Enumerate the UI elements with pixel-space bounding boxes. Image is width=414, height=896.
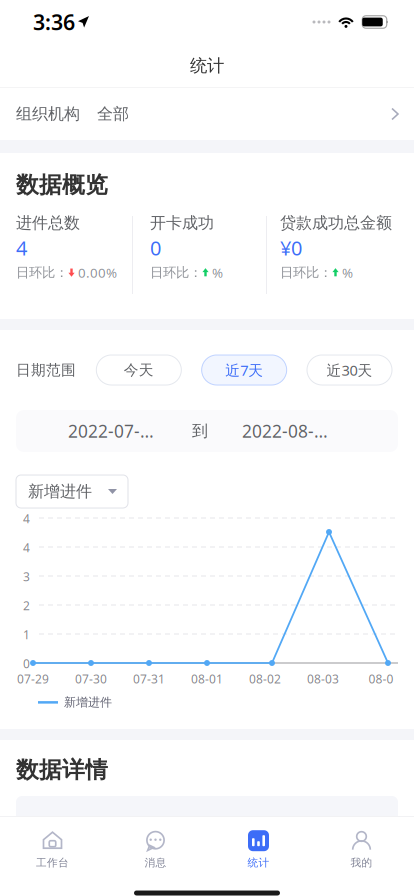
staticText: 日环比： [280,264,332,281]
staticText: 07-31 [133,671,165,687]
staticText: 08-02 [249,671,281,687]
button[interactable]: 工作台 [1,824,104,876]
staticText: 2022-08-04 [242,419,332,442]
staticText: 0.00% [78,264,117,281]
staticText: 近7天 [225,360,263,380]
staticText: % [342,264,353,281]
staticText: 日环比： [16,264,68,281]
staticText: 08-03 [307,671,339,687]
staticText: 0 [150,234,161,261]
staticText: 近30天 [326,360,372,380]
staticText: 开卡成功 [150,213,214,233]
button[interactable]: 今天 [96,355,181,385]
button[interactable]: 我的 [310,824,413,876]
staticText: 4 [16,234,27,261]
staticText: 贷款成功总金额 [280,213,392,233]
staticText: 日环比： [150,264,202,281]
button[interactable]: 近7天 [202,355,287,385]
staticText: 新增进件 [64,695,112,710]
staticText: 进件总数 [16,213,80,233]
staticText: 工作台 [36,856,69,869]
button[interactable]: 组织机构 [0,88,414,140]
staticText: 2022-07-29 [68,419,158,442]
staticText: 07-30 [75,671,107,687]
button[interactable]: 消息 [104,824,207,876]
staticText: 消息 [144,856,166,869]
staticText: 3 [23,568,30,584]
staticText: 我的 [350,856,372,869]
staticText: 4 [23,539,30,555]
button[interactable]: 近30天 [307,355,392,385]
staticText: 08-01 [191,671,223,687]
staticText: 07-29 [17,671,49,687]
staticText: ¥0 [280,234,302,261]
staticText: 今天 [124,361,154,379]
staticText: 08-0 [368,671,393,687]
staticText: 2 [23,597,30,613]
button[interactable]: 统计 [207,824,310,876]
staticText: 数据详情 [16,756,108,784]
staticText: % [212,264,223,281]
button[interactable]: 新增进件 [16,475,128,508]
staticText: 组织机构 [16,104,80,124]
staticText: 0 [23,655,30,671]
staticText: 统计 [190,55,224,76]
staticText: 日期范围 [16,361,76,379]
staticText: 4 [23,510,30,526]
staticText: 到 [192,421,208,441]
staticText: 统计 [247,856,269,869]
staticText: 1 [23,626,30,642]
staticText: 新增进件 [28,482,92,501]
staticText: 全部 [97,104,129,124]
staticText: 数据概览 [16,171,108,199]
staticText: 3:36 [33,8,75,36]
